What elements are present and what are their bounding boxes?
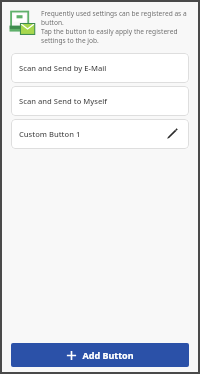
other: Scan and send [9, 10, 35, 36]
button[interactable]: Edit [163, 125, 181, 143]
staticText: Scan and Send by E-Mail [19, 63, 181, 73]
button[interactable]: Scan and Send by E-Mail [11, 53, 189, 83]
button[interactable]: Custom Button 1 [11, 119, 189, 149]
button[interactable]: Add Button [11, 343, 189, 367]
staticText: Frequently used settings can be register… [41, 9, 192, 45]
staticText: Custom Button 1 [19, 129, 163, 139]
staticText: Add Button [82, 349, 134, 361]
staticText: Scan and Send to Myself [19, 96, 181, 106]
button[interactable]: Scan and Send to Myself [11, 86, 189, 116]
